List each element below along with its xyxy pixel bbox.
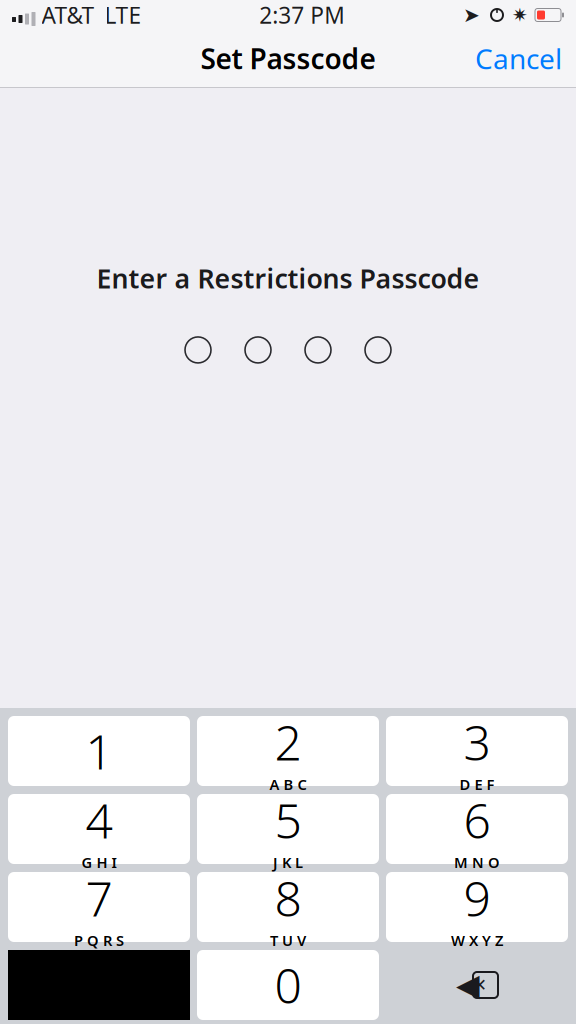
staticText: 9 [463, 866, 490, 930]
staticText: G H I [81, 853, 116, 872]
staticText: ➤ [463, 4, 480, 26]
staticText: Enter a Restrictions Passcode [96, 260, 479, 296]
staticText: 4 [85, 788, 112, 852]
button[interactable]: 7 [8, 872, 190, 942]
button[interactable]: 6 [386, 794, 568, 864]
staticText: J K L [273, 853, 303, 872]
staticText: ◀ [456, 968, 480, 1002]
staticText: M N O [454, 853, 500, 872]
button[interactable]: 8 [197, 872, 379, 942]
button[interactable]: Delete [386, 950, 568, 1020]
button[interactable]: 4 [8, 794, 190, 864]
button[interactable]: 0 [197, 950, 379, 1020]
staticText: D E F [459, 775, 494, 794]
staticText: ✷ [512, 4, 528, 26]
button[interactable]: Cancel [461, 32, 576, 85]
staticText: Set Passcode [200, 40, 375, 77]
button[interactable]: 5 [197, 794, 379, 864]
staticText: ✕ [472, 975, 487, 995]
staticText: 5 [274, 788, 301, 852]
button[interactable]: 1 [8, 716, 190, 786]
staticText: 2 [274, 710, 301, 774]
staticText: Cancel [475, 40, 562, 77]
staticText: 2:37 PM [259, 0, 345, 30]
staticText: 7 [85, 866, 112, 930]
staticText: W X Y Z [451, 931, 503, 950]
staticText: 1 [85, 719, 112, 783]
staticText: 6 [463, 788, 490, 852]
staticText: 0 [274, 953, 301, 1017]
staticText: AT&T [41, 0, 94, 30]
staticText: A B C [269, 775, 306, 794]
staticText: LTE [104, 0, 141, 30]
staticText: 8 [274, 866, 301, 930]
button[interactable]: 2 [197, 716, 379, 786]
button[interactable]: 3 [386, 716, 568, 786]
staticText: T U V [270, 931, 306, 950]
staticText: 3 [463, 710, 490, 774]
button[interactable]: 9 [386, 872, 568, 942]
staticText: P Q R S [74, 931, 124, 950]
